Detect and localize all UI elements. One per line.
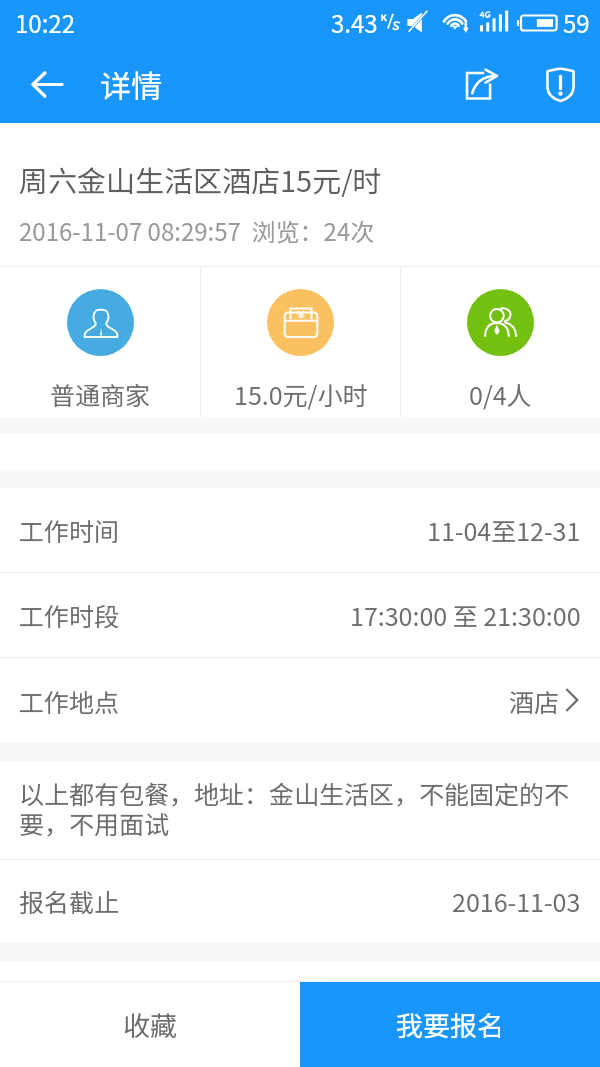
button[interactable]: 工作时段 <box>0 573 600 657</box>
button[interactable]: Back <box>0 45 80 123</box>
staticText: 15.0元/小时 <box>234 376 368 412</box>
staticText: 普通商家 <box>50 376 151 412</box>
staticText: 17:30:00 至 21:30:00 <box>350 597 581 633</box>
staticText: 2016-11-07 08:29:57 浏览：24次 <box>19 213 375 248</box>
button[interactable]: 工作地点 <box>0 658 600 743</box>
button[interactable]: 我要报名 <box>300 982 600 1067</box>
staticText: 收藏 <box>123 1005 177 1044</box>
staticText: 我要报名 <box>396 1005 504 1044</box>
staticText: 0/4人 <box>469 376 532 412</box>
staticText: 工作时间 <box>19 512 120 548</box>
staticText: 2016-11-03 <box>452 883 581 919</box>
staticText: 详情 <box>100 62 162 107</box>
button[interactable]: 0/4人 <box>401 267 600 417</box>
button[interactable]: Share <box>441 45 521 123</box>
staticText: 11-04至12-31 <box>427 512 581 548</box>
button[interactable]: 收藏 <box>0 982 300 1067</box>
button[interactable]: 报名截止 <box>0 860 600 941</box>
staticText: 以上都有包餐，地址：金山生活区，不能固定的不要，不用面试 <box>19 775 588 841</box>
staticText: 酒店 <box>509 683 560 719</box>
button[interactable]: 15.0元/小时 <box>201 267 400 417</box>
staticText: 3.43 <box>331 5 378 40</box>
staticText: 报名截止 <box>19 883 120 919</box>
staticText: 59 <box>563 5 590 40</box>
button[interactable]: Report <box>520 45 600 123</box>
staticText: 10:22 <box>15 5 75 40</box>
staticText: 周六金山生活区酒店15元/时 <box>19 158 382 200</box>
staticText: 工作地点 <box>19 683 120 719</box>
button[interactable]: 工作时间 <box>0 488 600 572</box>
staticText: 工作时段 <box>19 597 120 633</box>
button[interactable]: 普通商家 <box>0 267 200 417</box>
